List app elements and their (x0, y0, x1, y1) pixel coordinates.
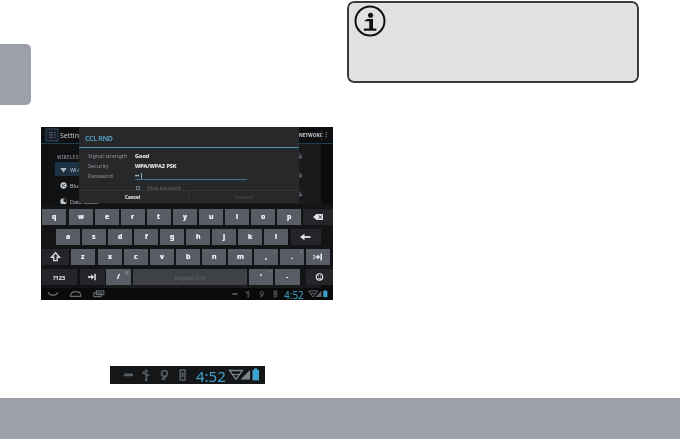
staticText: Connect (234, 194, 253, 200)
button[interactable]: English (US) (133, 269, 247, 285)
button[interactable]: e (95, 209, 119, 225)
button[interactable]: u (199, 209, 223, 225)
staticText: k (248, 232, 253, 242)
button[interactable]: Data usage (55, 194, 103, 208)
button[interactable]: . (280, 249, 304, 265)
staticText: u (209, 212, 214, 222)
button[interactable]: o (251, 209, 275, 225)
staticText: •• (135, 172, 140, 180)
button[interactable]: Shift (42, 249, 69, 265)
button[interactable]: Cancel (79, 191, 187, 203)
button[interactable]: g (160, 229, 184, 245)
staticText: y (183, 212, 187, 222)
staticText: " (269, 270, 271, 275)
staticText: s (92, 232, 96, 242)
staticText: NETWORK (299, 132, 323, 138)
staticText: r (131, 212, 135, 222)
button[interactable]: f (134, 229, 158, 245)
button[interactable]: , (254, 249, 278, 265)
button[interactable]: m (228, 249, 252, 265)
button[interactable]: Wi-Fi (55, 162, 103, 176)
button[interactable]: q (42, 209, 66, 225)
staticText: p (287, 212, 292, 222)
staticText: a (66, 232, 71, 242)
staticText: Bluetooth (70, 182, 96, 189)
button[interactable]: s (82, 229, 106, 245)
staticText: 4:52 (284, 288, 304, 300)
staticText: ' (260, 272, 262, 282)
staticText: ?123 (53, 274, 66, 281)
button[interactable]: ?123 (42, 269, 77, 285)
button[interactable]: j (212, 229, 236, 245)
staticText: @ (125, 270, 129, 275)
button[interactable]: z (71, 249, 95, 265)
staticText: z (81, 252, 85, 262)
button[interactable]: Home (70, 288, 82, 300)
button[interactable]: Recents (93, 288, 105, 300)
staticText: w (78, 212, 84, 222)
button[interactable]: r (121, 209, 145, 225)
button[interactable]: - (275, 269, 300, 285)
staticText: f (145, 232, 148, 242)
staticText: l (275, 232, 278, 242)
staticText: Wi-Fi (70, 166, 83, 173)
button[interactable]: h (186, 229, 210, 245)
button[interactable]: p (277, 209, 301, 225)
button[interactable]: x (98, 249, 122, 265)
button[interactable]: Connect (188, 191, 298, 203)
staticText: Good (135, 152, 150, 159)
staticText: Signal strength (88, 152, 128, 159)
button[interactable]: Bluetooth (55, 178, 103, 192)
staticText: Cancel (125, 194, 141, 200)
staticText: o (261, 212, 266, 222)
staticText: 4:52 (196, 366, 226, 384)
staticText: m (237, 252, 244, 262)
staticText: d (118, 232, 123, 242)
button[interactable]: d (108, 229, 132, 245)
button[interactable]: v (150, 249, 174, 265)
button[interactable]: Backspace (303, 209, 333, 225)
staticText: ? (300, 250, 302, 255)
button[interactable]: Back (47, 288, 59, 300)
staticText: WPA/WPA2 PSK (135, 162, 177, 169)
button[interactable] (136, 185, 166, 191)
button[interactable]: Enter (291, 229, 321, 245)
button[interactable]: l (264, 229, 288, 245)
staticText: English (US) (175, 274, 206, 281)
staticText: j (223, 232, 226, 242)
staticText: , (265, 252, 267, 262)
button[interactable]: b (176, 249, 200, 265)
staticText: Password (88, 172, 113, 179)
staticText: i (236, 212, 239, 222)
staticText: WIRELESS (57, 154, 81, 160)
staticText: . (291, 252, 293, 262)
staticText: h (196, 232, 201, 242)
staticText: e (105, 212, 110, 222)
staticText: Settings (60, 131, 87, 141)
staticText: Security (88, 162, 109, 169)
button[interactable]: w (69, 209, 93, 225)
button[interactable]: a (56, 229, 80, 245)
staticText: Data usage (70, 198, 100, 205)
button[interactable]: k (238, 229, 262, 245)
staticText: g (170, 232, 175, 242)
button[interactable]: c (124, 249, 148, 265)
button[interactable]: ' (249, 269, 273, 285)
staticText: c (134, 252, 138, 262)
button[interactable]: Emoji (306, 269, 333, 285)
staticText: CCL RND (85, 134, 113, 144)
button[interactable]: n (202, 249, 226, 265)
staticText: b (186, 252, 191, 262)
button[interactable]: Tab (306, 249, 330, 265)
button[interactable]: t (147, 209, 171, 225)
button[interactable]: Tab (80, 269, 105, 285)
staticText: ! (274, 250, 276, 255)
button[interactable]: More options (322, 129, 333, 140)
staticText: Show password (147, 185, 181, 191)
button[interactable]: Settings (46, 129, 58, 141)
button[interactable]: y (173, 209, 197, 225)
button[interactable]: i (225, 209, 249, 225)
staticText: / (117, 272, 120, 282)
button[interactable]: / (106, 269, 131, 285)
staticText: - (286, 272, 289, 282)
